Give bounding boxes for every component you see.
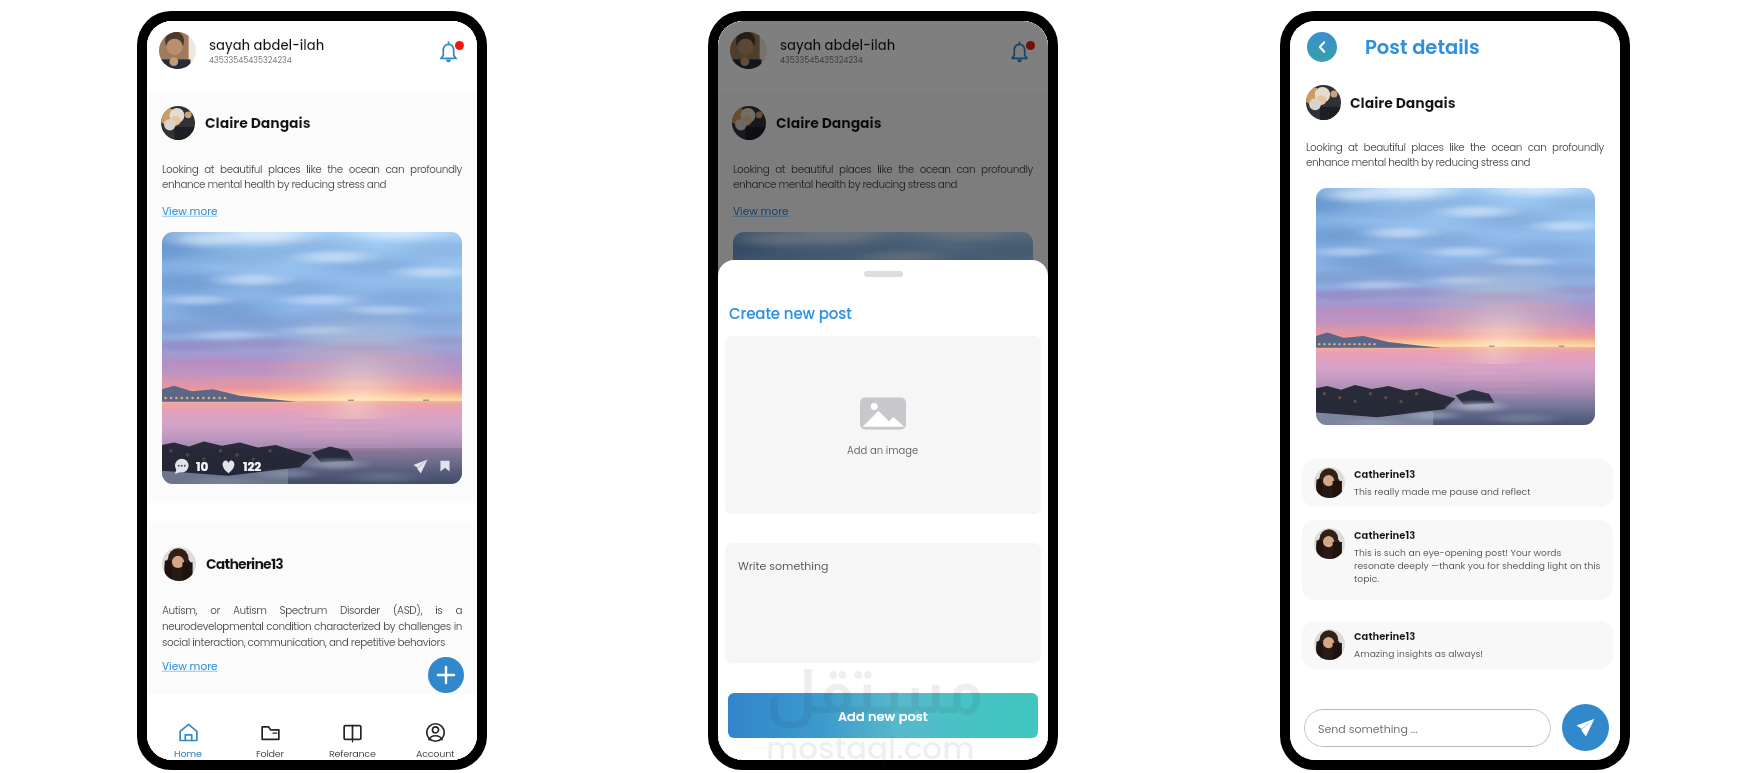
- staticText: Looking at beautiful places like the oce…: [1306, 140, 1604, 170]
- button[interactable]: Back: [1307, 32, 1337, 62]
- button[interactable]: Catherine13: [1302, 459, 1613, 507]
- button[interactable]: Save: [439, 460, 451, 472]
- staticText: sayah abdel-ilah: [780, 36, 896, 54]
- staticText: 122: [243, 458, 262, 475]
- staticText: Folder: [827, 747, 855, 760]
- button[interactable]: Write something: [725, 543, 1041, 663]
- staticText: Looking at beautiful places like the oce…: [733, 162, 1033, 192]
- button[interactable]: Claire Dangais: [732, 106, 882, 140]
- button[interactable]: Share: [413, 459, 428, 474]
- staticText: 10: [196, 458, 209, 475]
- button[interactable]: Catherine13: [733, 547, 855, 581]
- button[interactable]: Notifications: [1010, 38, 1036, 64]
- button[interactable]: View more: [162, 204, 218, 219]
- staticText: This is such an eye-opening post! Your w…: [1354, 546, 1603, 585]
- staticText: Catherine13: [1354, 629, 1416, 643]
- button[interactable]: Catherine13: [1302, 520, 1613, 600]
- button[interactable]: Add new post: [728, 693, 1038, 738]
- button[interactable]: Referance: [311, 723, 394, 760]
- button[interactable]: Send: [1562, 704, 1609, 751]
- button[interactable]: Claire Dangais: [161, 106, 311, 140]
- button[interactable]: View more: [733, 659, 789, 674]
- staticText: Send something ...: [1318, 721, 1418, 736]
- button[interactable]: Catherine13: [162, 547, 284, 581]
- staticText: View more: [733, 204, 789, 219]
- staticText: View more: [162, 659, 218, 674]
- staticText: mostaql.com: [766, 726, 975, 769]
- button[interactable]: sayah abdel-ilah: [147, 21, 477, 92]
- staticText: Create new post: [729, 303, 852, 324]
- staticText: Folder: [256, 747, 284, 760]
- button[interactable]: Send something ...: [1304, 709, 1551, 747]
- button[interactable]: Notifications: [439, 38, 465, 64]
- staticText: 43533545435324234: [209, 55, 292, 66]
- button[interactable]: Account: [965, 723, 1048, 760]
- staticText: sayah abdel-ilah: [209, 36, 325, 54]
- staticText: Claire Dangais: [776, 113, 882, 133]
- button[interactable]: Referance: [882, 723, 965, 760]
- staticText: Claire Dangais: [1350, 93, 1456, 113]
- staticText: View more: [733, 659, 789, 674]
- staticText: مستقل: [766, 657, 984, 726]
- staticText: View more: [162, 204, 218, 219]
- button[interactable]: Add an image: [725, 336, 1041, 514]
- staticText: Home: [174, 747, 202, 760]
- button[interactable]: Home: [718, 723, 800, 760]
- staticText: This really made me pause and reflect: [1354, 485, 1531, 498]
- staticText: Catherine13: [1354, 467, 1416, 481]
- staticText: Referance: [329, 747, 376, 760]
- staticText: Add an image: [847, 443, 919, 457]
- button[interactable]: Folder: [800, 723, 882, 760]
- staticText: 43533545435324234: [780, 55, 863, 66]
- button[interactable]: Folder: [229, 723, 311, 760]
- staticText: Referance: [900, 747, 947, 760]
- staticText: Catherine13: [1354, 528, 1416, 542]
- staticText: Claire Dangais: [205, 113, 311, 133]
- button[interactable]: Catherine13: [1302, 621, 1613, 669]
- button[interactable]: Create new post: [428, 657, 464, 693]
- staticText: Catherine13: [777, 554, 855, 574]
- staticText: Post details: [1365, 34, 1480, 61]
- button[interactable]: sayah abdel-ilah: [718, 21, 1048, 92]
- staticText: Account: [416, 747, 455, 760]
- staticText: Amazing insights as always!: [1354, 647, 1484, 660]
- button[interactable]: Claire Dangais: [1306, 85, 1456, 120]
- button[interactable]: Home: [147, 723, 229, 760]
- button[interactable]: View more: [733, 204, 789, 219]
- staticText: Home: [745, 747, 773, 760]
- staticText: Catherine13: [206, 554, 284, 574]
- button[interactable]: Account: [394, 723, 477, 760]
- staticText: Autism, or Autism Spectrum Disorder (ASD…: [162, 603, 462, 649]
- button[interactable]: View more: [162, 659, 218, 674]
- button[interactable]: Create new post: [999, 657, 1035, 693]
- staticText: Write something: [738, 558, 829, 573]
- staticText: Add new post: [838, 707, 928, 725]
- staticText: Looking at beautiful places like the oce…: [162, 162, 462, 192]
